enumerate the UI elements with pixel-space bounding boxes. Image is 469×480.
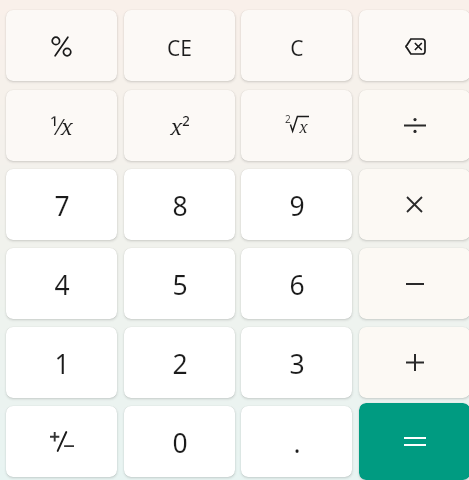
button[interactable]: 0 bbox=[124, 406, 235, 477]
staticText: x bbox=[299, 116, 308, 134]
staticText: 9 bbox=[289, 188, 305, 224]
button[interactable]: 3 bbox=[241, 327, 352, 398]
button[interactable]: Equals bbox=[359, 403, 469, 480]
staticText: x² bbox=[170, 111, 190, 141]
staticText: 4 bbox=[54, 267, 70, 303]
button[interactable]: 5 bbox=[124, 248, 235, 319]
staticText: 2 bbox=[172, 346, 188, 382]
button[interactable]: 4 bbox=[6, 248, 117, 319]
button[interactable]: Multiply bbox=[359, 169, 469, 240]
button[interactable]: Plus minus bbox=[6, 406, 117, 477]
button[interactable]: Clear entry bbox=[124, 10, 235, 81]
staticText: CE bbox=[167, 34, 192, 63]
button[interactable]: 2 bbox=[124, 327, 235, 398]
staticText: 8 bbox=[172, 188, 188, 224]
button[interactable]: 6 bbox=[241, 248, 352, 319]
button[interactable]: Clear bbox=[241, 10, 352, 81]
button[interactable]: 1 bbox=[6, 327, 117, 398]
button[interactable]: Minus bbox=[359, 248, 469, 319]
button[interactable]: Divide bbox=[359, 90, 469, 161]
staticText: 1 bbox=[54, 346, 70, 382]
button[interactable]: 9 bbox=[241, 169, 352, 240]
button[interactable]: Square root bbox=[241, 90, 352, 161]
staticText: 3 bbox=[289, 346, 305, 382]
button[interactable]: x squared bbox=[124, 90, 235, 161]
staticText: C bbox=[290, 34, 304, 63]
button[interactable]: 8 bbox=[124, 169, 235, 240]
staticText: 2 bbox=[285, 112, 291, 126]
staticText: 6 bbox=[289, 267, 305, 303]
button[interactable]: Decimal point bbox=[241, 406, 352, 477]
staticText: 5 bbox=[172, 267, 188, 303]
button[interactable]: One over x bbox=[6, 90, 117, 161]
staticText: . bbox=[293, 425, 301, 461]
staticText: ¹⁄x bbox=[50, 111, 73, 141]
button[interactable]: 7 bbox=[6, 169, 117, 240]
button[interactable]: Percent bbox=[6, 10, 117, 81]
button[interactable]: Backspace bbox=[359, 10, 469, 81]
staticText: 7 bbox=[54, 188, 70, 224]
staticText: 0 bbox=[172, 425, 188, 461]
button[interactable]: Plus bbox=[359, 327, 469, 398]
